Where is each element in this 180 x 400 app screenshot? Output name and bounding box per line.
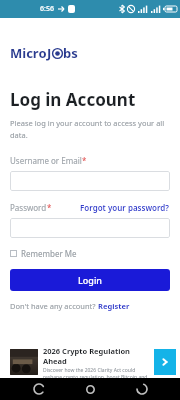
- button[interactable]: Forgot your password?: [80, 202, 170, 213]
- button[interactable]: Back: [26, 378, 52, 400]
- staticText: Micro: [10, 44, 47, 62]
- staticText: Discover how the 2026 Clarity Act could …: [43, 367, 150, 378]
- staticText: *: [47, 202, 52, 213]
- button[interactable]: Register: [98, 301, 130, 311]
- staticText: Register: [98, 301, 130, 311]
- button[interactable]: Remember Me: [10, 248, 77, 259]
- button[interactable]: Recent apps: [129, 378, 155, 400]
- staticText: *: [82, 155, 87, 166]
- staticText: Username or Email: [10, 155, 82, 166]
- staticText: Forgot your password?: [80, 202, 170, 213]
- button[interactable]: 2026 Crypto Regulation Ahead: [0, 346, 180, 378]
- staticText: Log in Account: [10, 88, 136, 111]
- button[interactable]: Open ad: [154, 349, 176, 375]
- staticText: Password: [10, 202, 47, 213]
- button[interactable]: Home: [77, 378, 103, 400]
- staticText: Remember Me: [21, 248, 77, 259]
- staticText: Don't have any account?: [10, 301, 98, 311]
- button[interactable]: Login: [10, 269, 170, 291]
- staticText: bs: [63, 44, 78, 62]
- staticText: Please log in your account to access you…: [10, 118, 170, 141]
- button[interactable]: [10, 218, 170, 238]
- staticText: 2026 Crypto Regulation Ahead: [43, 346, 150, 366]
- staticText: Login: [78, 274, 102, 286]
- button[interactable]: [10, 171, 170, 191]
- staticText: 6:56: [40, 4, 54, 14]
- staticText: J: [47, 44, 52, 62]
